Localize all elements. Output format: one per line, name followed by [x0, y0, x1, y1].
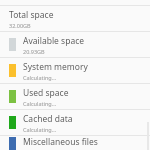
staticText: Calculating... — [23, 126, 57, 133]
staticText: Cached data — [23, 113, 73, 125]
button[interactable]: Cached data — [0, 110, 150, 136]
button[interactable]: Available space — [0, 32, 150, 58]
button[interactable]: Total space — [0, 6, 150, 32]
staticText: Used space — [23, 87, 69, 99]
staticText: Total space — [9, 9, 54, 21]
staticText: Available space — [23, 35, 85, 47]
staticText: Calculating... — [23, 100, 57, 107]
button[interactable]: System memory — [0, 58, 150, 84]
staticText: Calculating... — [23, 74, 57, 81]
staticText: 32.00GB — [9, 22, 31, 29]
button[interactable]: Miscellaneous files — [0, 136, 150, 150]
staticText: 20.93GB — [23, 48, 45, 55]
staticText: System memory — [23, 61, 88, 73]
staticText: Miscellaneous files — [23, 136, 98, 148]
button[interactable]: Used space — [0, 84, 150, 110]
